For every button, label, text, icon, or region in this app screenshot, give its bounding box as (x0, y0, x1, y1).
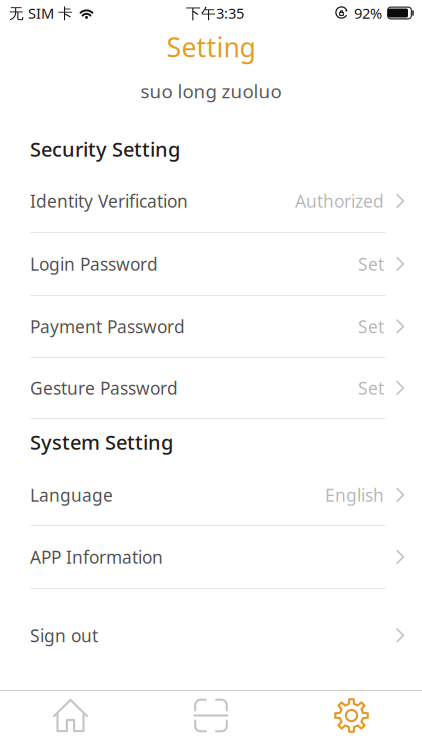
staticText: Set (358, 315, 384, 338)
button[interactable]: APP Information (0, 526, 422, 588)
staticText: Identity Verification (30, 189, 188, 212)
button[interactable]: Sign out (0, 589, 422, 682)
button[interactable]: Scan (141, 691, 281, 740)
button[interactable]: Login Password (0, 233, 422, 295)
staticText: 下午3:35 (186, 3, 244, 23)
staticText: Sign out (30, 624, 98, 647)
staticText: Security Setting (30, 136, 180, 162)
staticText: 无 SIM 卡 (9, 3, 73, 23)
staticText: Gesture Password (30, 376, 178, 399)
button[interactable]: Gesture Password (0, 358, 422, 418)
staticText: English (325, 483, 384, 506)
staticText: APP Information (30, 545, 163, 568)
staticText: Set (358, 252, 384, 275)
staticText: suo long zuoluo (140, 79, 281, 103)
staticText: Set (358, 376, 384, 399)
staticText: 92% (354, 3, 382, 23)
button[interactable]: Home (0, 691, 141, 740)
button[interactable]: Identity Verification (0, 170, 422, 232)
staticText: Login Password (30, 252, 158, 275)
staticText: Payment Password (30, 315, 185, 338)
staticText: Setting (166, 29, 255, 65)
button[interactable]: Settings (281, 691, 422, 740)
staticText: System Setting (30, 429, 173, 455)
button[interactable]: Payment Password (0, 296, 422, 357)
staticText: Language (30, 483, 113, 506)
button[interactable]: Language (0, 465, 422, 525)
staticText: Authorized (295, 189, 384, 212)
